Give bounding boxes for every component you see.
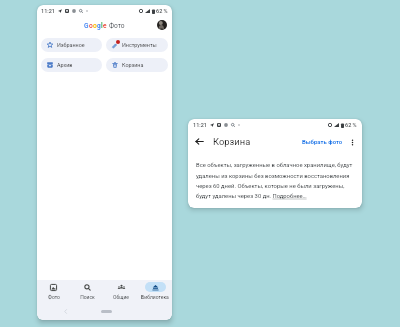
button[interactable]: Корзина [106,58,168,72]
button[interactable]: Библиотека [138,280,172,303]
staticText: Корзина [213,136,251,147]
staticText: Инструменты [122,42,157,48]
button[interactable]: Общие [104,280,138,303]
button[interactable]: Архив [41,58,102,72]
staticText: Фото [109,22,125,30]
staticText: G [84,22,89,30]
staticText: Общие [113,294,129,300]
staticText: o [93,22,97,30]
staticText: 11:21 [193,122,207,128]
staticText: Все объекты, загруженные в облачное хран… [196,162,356,200]
button[interactable]: Назад [194,136,205,147]
staticText: Корзина [122,62,144,68]
staticText: 62 % [156,8,168,14]
button[interactable]: Инструменты [106,38,168,52]
button[interactable]: Выбрать фото [300,135,345,148]
staticText: 11:21 [41,8,55,14]
staticText: Избранное [57,42,85,48]
staticText: Фото [48,294,60,300]
staticText: l [101,22,103,30]
staticText: Архив [57,62,73,68]
button[interactable]: Поиск [70,280,104,303]
staticText: Выбрать фото [302,138,343,145]
staticText: o [89,22,93,30]
staticText: Библиотека [141,294,169,300]
staticText: e [103,22,107,30]
staticText: 62 % [345,122,357,128]
button[interactable]: Избранное [41,38,102,52]
button[interactable]: Ещё [347,137,357,147]
staticText: g [97,22,101,30]
button[interactable]: Фото [37,280,70,303]
staticText: Поиск [80,294,95,300]
button[interactable]: Аккаунт [157,20,167,30]
